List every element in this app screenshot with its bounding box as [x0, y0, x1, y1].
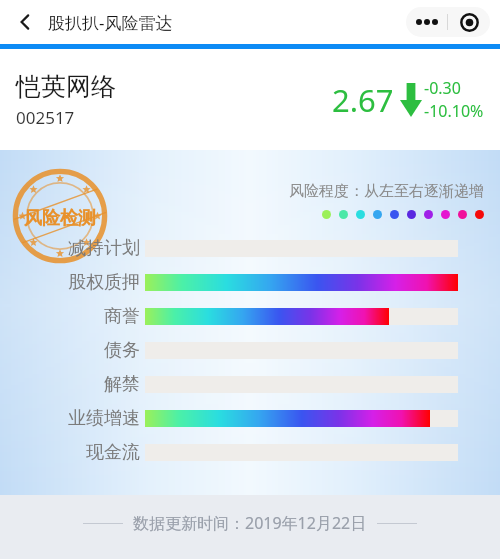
staticText: -0.30 [424, 77, 461, 99]
button[interactable]: 股权质押 [0, 265, 500, 299]
staticText: 现金流 [86, 441, 140, 464]
button[interactable]: Close [448, 7, 490, 37]
button[interactable]: Back [8, 5, 42, 39]
staticText: 股扒扒-风险雷达 [48, 11, 173, 34]
staticText: -10.10% [424, 100, 484, 122]
staticText: 商誉 [104, 305, 140, 328]
button[interactable]: More options [406, 7, 447, 37]
button[interactable]: 减持计划 [0, 231, 500, 265]
staticText: 解禁 [104, 373, 140, 396]
staticText: 业绩增速 [68, 407, 140, 430]
staticText: 数据更新时间：2019年12月22日 [133, 512, 367, 534]
staticText: 2.67 [332, 79, 394, 121]
staticText: 股权质押 [68, 271, 140, 294]
staticText: 风险程度：从左至右逐渐递增 [289, 182, 484, 201]
staticText: 002517 [16, 106, 75, 129]
staticText: 风险检测 [24, 207, 96, 230]
button[interactable]: 现金流 [0, 435, 500, 469]
staticText: 恺英网络 [16, 71, 116, 102]
button[interactable]: 业绩增速 [0, 401, 500, 435]
button[interactable]: 解禁 [0, 367, 500, 401]
staticText: 债务 [104, 339, 140, 362]
staticText: 减持计划 [68, 237, 140, 260]
button[interactable]: 债务 [0, 333, 500, 367]
button[interactable]: 商誉 [0, 299, 500, 333]
